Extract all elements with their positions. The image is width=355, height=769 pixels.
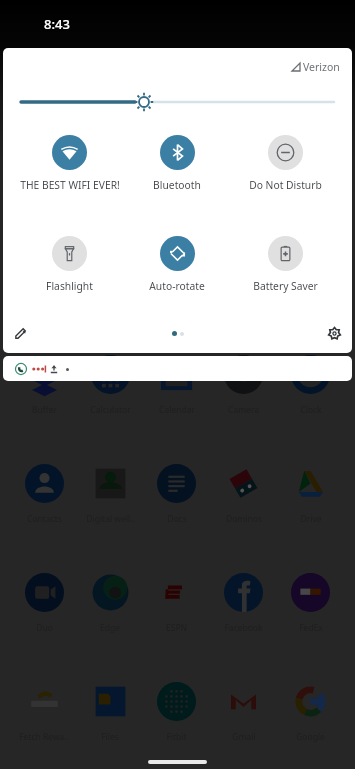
staticText: Do Not Disturb: [249, 178, 322, 192]
button[interactable]: [3, 356, 352, 381]
button[interactable]: Settings: [319, 318, 349, 348]
staticText: Auto-rotate: [149, 279, 205, 293]
staticText: 8:43: [44, 15, 70, 33]
staticText: Bluetooth: [153, 178, 201, 192]
staticText: Battery Saver: [253, 279, 318, 293]
button[interactable]: Flashlight: [16, 236, 123, 293]
staticText: Flashlight: [46, 279, 93, 293]
button[interactable]: THE BEST WIFI EVER!: [16, 135, 123, 192]
button[interactable]: Auto-rotate: [123, 236, 231, 293]
button[interactable]: Battery Saver: [231, 236, 339, 293]
button[interactable]: Bluetooth: [123, 135, 231, 192]
button[interactable]: Do Not Disturb: [231, 135, 339, 192]
staticText: THE BEST WIFI EVER!: [20, 178, 120, 192]
staticText: Verizon: [303, 60, 340, 74]
button[interactable]: Edit tiles: [6, 318, 36, 348]
